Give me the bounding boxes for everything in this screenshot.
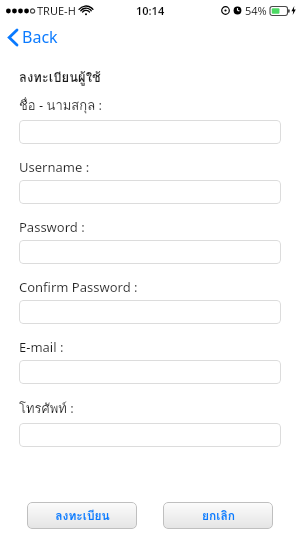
button[interactable] — [19, 240, 281, 264]
staticText: 10:14 — [136, 3, 165, 18]
staticText: ลงทะเบียน — [55, 506, 110, 525]
staticText: Confirm Password : — [19, 278, 138, 296]
staticText: TRUE-H — [37, 3, 76, 18]
button[interactable] — [19, 180, 281, 204]
button[interactable] — [19, 360, 281, 384]
staticText: Username : — [19, 158, 90, 176]
button[interactable]: ลงทะเบียน — [27, 502, 137, 529]
staticText: Back — [22, 26, 58, 48]
staticText: E-mail : — [19, 338, 64, 356]
button[interactable] — [19, 423, 281, 447]
button[interactable]: Back — [3, 23, 63, 51]
staticText: ชื่อ - นามสกุล : — [19, 95, 102, 116]
button[interactable] — [19, 120, 281, 144]
staticText: Password : — [19, 218, 85, 236]
staticText: 54% — [245, 3, 267, 18]
staticText: โทรศัพท์ : — [19, 398, 74, 419]
button[interactable] — [19, 300, 281, 324]
button[interactable]: ยกเลิก — [163, 502, 273, 529]
staticText: ยกเลิก — [202, 506, 235, 525]
staticText: ลงทะเบียนผู้ใช้ — [19, 67, 101, 88]
